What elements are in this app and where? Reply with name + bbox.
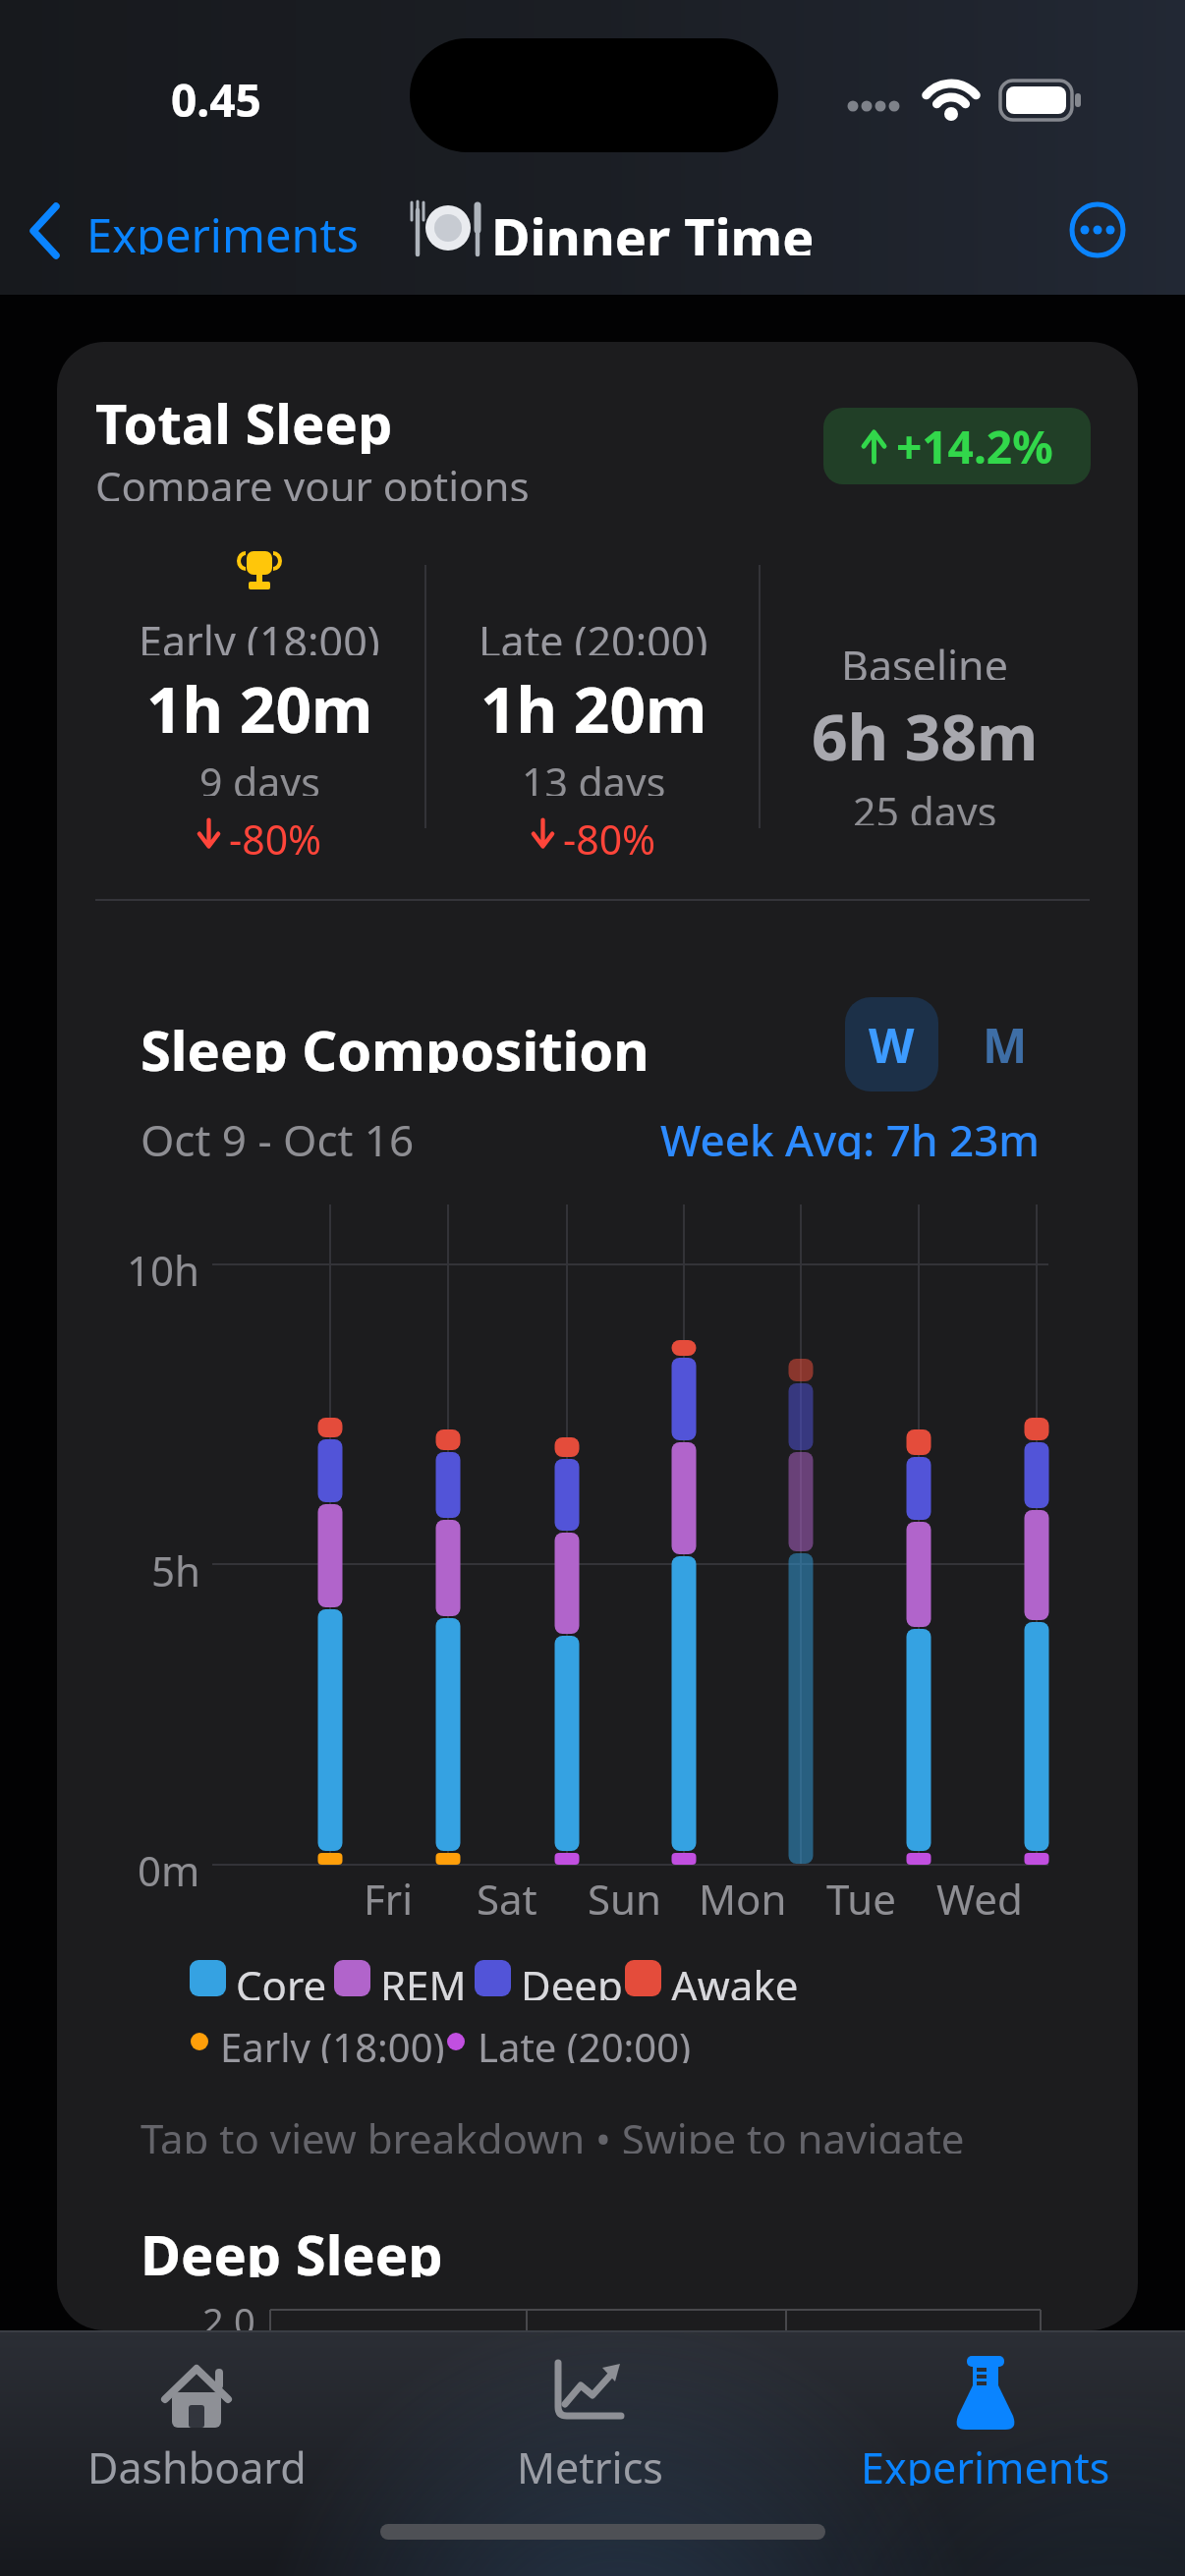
button[interactable]: Dashboard — [79, 2340, 314, 2507]
staticText: Early (18:00) — [220, 2020, 445, 2063]
staticText: 0m — [138, 1842, 200, 1887]
staticText: Sun — [588, 1871, 661, 1916]
button[interactable] — [20, 192, 383, 270]
staticText: REM — [380, 1957, 467, 2000]
staticText: Sat — [477, 1871, 537, 1916]
staticText: 5h — [151, 1542, 200, 1588]
staticText: Tue — [826, 1871, 896, 1916]
staticText: Late (20:00) — [479, 612, 708, 655]
staticText: Dinner Time — [491, 200, 815, 255]
staticText: M — [983, 1013, 1028, 1077]
staticText: Baseline — [841, 637, 1008, 680]
staticText: -80% — [563, 812, 656, 855]
staticText: 13 days — [522, 755, 666, 796]
staticText: Mon — [699, 1871, 787, 1916]
button[interactable] — [845, 997, 938, 1092]
button[interactable] — [823, 408, 1091, 484]
staticText: Dashboard — [87, 2438, 307, 2486]
staticText: Week Avg: 7h 23m — [660, 1110, 1040, 1159]
staticText: Sleep Composition — [141, 1012, 649, 1073]
staticText: 1h 20m — [480, 666, 707, 745]
staticText: 1h 20m — [146, 666, 373, 745]
staticText: Total Sleep — [95, 385, 393, 454]
staticText: Deep Sleep — [141, 2216, 443, 2277]
staticText: 0.45 — [171, 69, 261, 120]
staticText: 2,0 — [202, 2295, 255, 2330]
staticText: 10h — [127, 1242, 200, 1287]
staticText: 6h 38m — [812, 694, 1039, 770]
staticText: Early (18:00) — [139, 612, 380, 655]
staticText: 9 days — [199, 755, 320, 796]
button[interactable]: Experiments — [838, 2340, 1133, 2507]
staticText: Tap to view breakdown • Swipe to navigat… — [141, 2110, 965, 2154]
staticText: Deep — [521, 1957, 623, 2000]
button[interactable]: Metrics — [472, 2340, 707, 2507]
staticText: Experiments — [861, 2438, 1110, 2486]
staticText: Metrics — [517, 2438, 663, 2486]
staticText: Oct 9 - Oct 16 — [141, 1110, 415, 1159]
staticText: Fri — [364, 1871, 413, 1916]
staticText: 25 days — [853, 784, 997, 825]
staticText: Late (20:00) — [478, 2020, 692, 2063]
staticText: Compare your options — [95, 458, 530, 501]
staticText: -80% — [229, 812, 322, 855]
staticText: Experiments — [86, 203, 359, 254]
staticText: Wed — [936, 1871, 1023, 1916]
staticText: W — [869, 1013, 915, 1077]
staticText: Awake — [671, 1957, 799, 2000]
button[interactable]: M — [961, 997, 1049, 1092]
staticText: +14.2% — [896, 416, 1053, 477]
button[interactable] — [1066, 198, 1129, 261]
staticText: Core — [236, 1957, 327, 2000]
